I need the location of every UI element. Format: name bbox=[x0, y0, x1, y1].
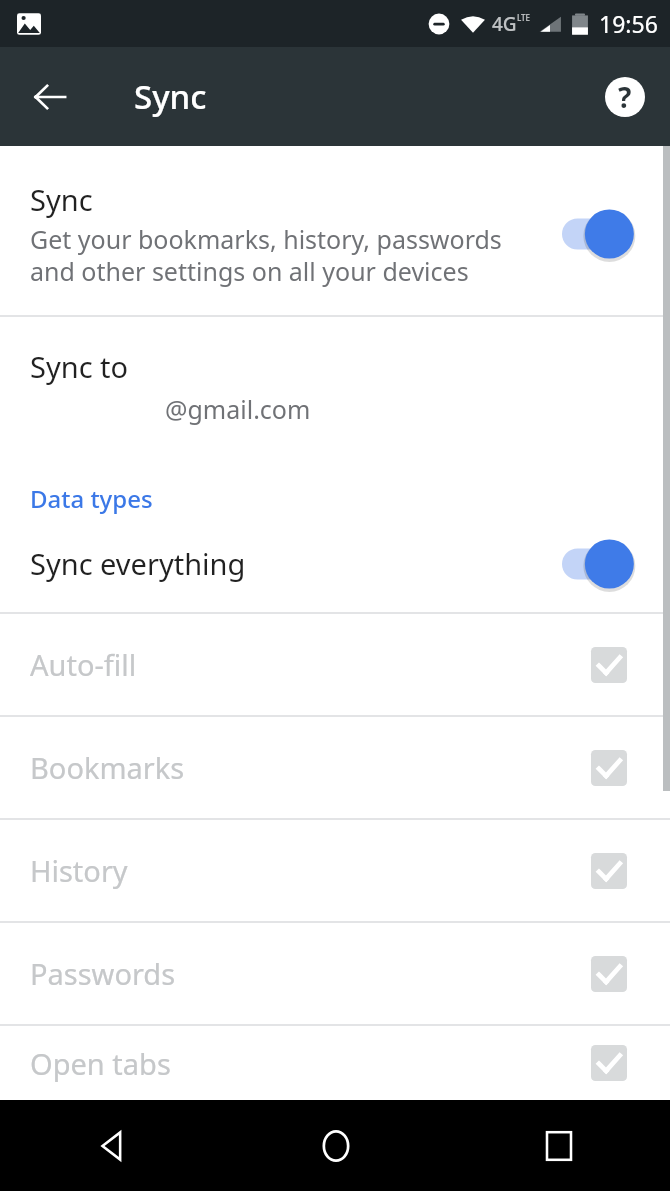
button[interactable]: Bookmarks checkbox bbox=[580, 739, 638, 797]
staticText: ? bbox=[618, 78, 632, 116]
staticText: Get your bookmarks, history, passwords a… bbox=[30, 222, 502, 288]
button[interactable]: History bbox=[0, 820, 670, 921]
staticText: Passwords bbox=[30, 954, 580, 993]
staticText: @gmail.com bbox=[165, 392, 311, 426]
staticText: Sync everything bbox=[30, 544, 558, 583]
staticText: History bbox=[30, 851, 580, 890]
button[interactable]: Recent apps bbox=[447, 1100, 670, 1191]
button[interactable]: Sync bbox=[0, 153, 670, 315]
button[interactable]: Open tabs checkbox bbox=[580, 1034, 638, 1092]
staticText: Data types bbox=[30, 482, 153, 515]
staticText: Sync bbox=[30, 180, 93, 219]
staticText: 19:56 bbox=[599, 8, 658, 39]
staticText: Auto-fill bbox=[30, 645, 580, 684]
button[interactable]: Back bbox=[0, 1100, 224, 1191]
button[interactable]: Passwords bbox=[0, 923, 670, 1024]
button[interactable]: Open tabs bbox=[0, 1026, 670, 1100]
button[interactable]: Bookmarks bbox=[0, 717, 670, 818]
button[interactable]: Auto-fill bbox=[0, 614, 670, 715]
button[interactable]: Help bbox=[594, 66, 656, 128]
staticText: Sync bbox=[134, 74, 207, 119]
staticText: 4G bbox=[492, 11, 517, 37]
button[interactable]: History checkbox bbox=[580, 842, 638, 900]
button[interactable]: Sync toggle bbox=[558, 203, 644, 265]
staticText: Bookmarks bbox=[30, 748, 580, 787]
button[interactable]: Sync to bbox=[0, 317, 670, 482]
staticText: Open tabs bbox=[30, 1044, 580, 1083]
button[interactable]: Home bbox=[224, 1100, 447, 1191]
staticText: Sync to bbox=[30, 347, 129, 386]
button[interactable]: Sync everything toggle bbox=[558, 533, 644, 595]
button[interactable]: Passwords checkbox bbox=[580, 945, 638, 1003]
button[interactable]: Sync everything bbox=[0, 515, 670, 612]
button[interactable]: Back bbox=[18, 65, 82, 129]
button[interactable]: Auto-fill checkbox bbox=[580, 636, 638, 694]
staticText: LTE bbox=[517, 12, 531, 23]
